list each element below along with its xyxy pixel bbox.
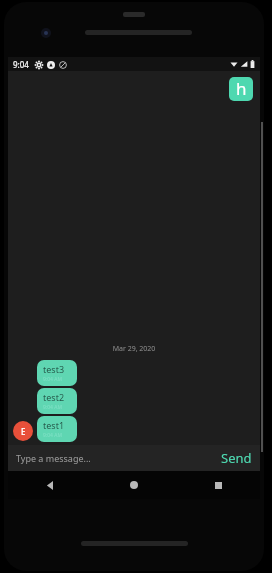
staticText: h	[236, 77, 247, 100]
button[interactable]: Type a message...	[8, 445, 213, 471]
staticText: test1	[43, 419, 65, 431]
staticText: test2	[43, 391, 65, 403]
button[interactable]: Back	[8, 471, 92, 499]
button[interactable]: Recent apps	[176, 471, 260, 499]
staticText: Type a message...	[16, 452, 91, 464]
button[interactable]: test1	[37, 416, 77, 442]
staticText: Mar 29, 2020	[8, 344, 260, 354]
button[interactable]: test2	[37, 388, 77, 414]
button[interactable]: Sender avatar E	[13, 421, 33, 441]
staticText: 9:04 AM	[43, 376, 62, 383]
staticText: E	[21, 426, 26, 437]
staticText: Send	[221, 449, 252, 467]
staticText: 9:04	[13, 59, 29, 70]
button[interactable]: test3	[37, 360, 77, 386]
staticText: 9:04 AM	[43, 432, 62, 439]
button[interactable]: App logo	[229, 77, 253, 101]
staticText: test3	[43, 363, 65, 375]
button[interactable]: Home	[92, 471, 176, 499]
staticText: 9:04 AM	[43, 404, 62, 411]
button[interactable]: Send	[213, 445, 260, 471]
